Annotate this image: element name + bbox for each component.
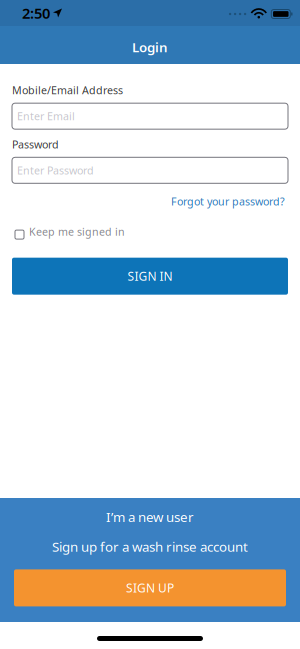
button[interactable]: SIGN UP xyxy=(14,569,286,606)
staticText: Enter Password xyxy=(17,163,94,177)
staticText: SIGN UP xyxy=(126,580,174,596)
button[interactable]: SIGN IN xyxy=(12,258,288,295)
staticText: Keep me signed in xyxy=(29,224,125,239)
staticText: Login xyxy=(132,38,168,56)
staticText: 2:50 xyxy=(22,3,50,23)
staticText: Enter Email xyxy=(17,109,75,123)
staticText: Password xyxy=(12,137,59,151)
button[interactable]: Enter Email xyxy=(12,103,288,129)
staticText: Forgot your password? xyxy=(171,194,285,208)
button[interactable]: Keep me signed in xyxy=(12,227,125,242)
button[interactable]: Forgot your password? xyxy=(171,194,285,208)
button[interactable]: Enter Password xyxy=(12,157,288,183)
staticText: Sign up for a wash rinse account xyxy=(52,538,248,555)
staticText: I’m a new user xyxy=(106,508,194,526)
staticText: SIGN IN xyxy=(127,268,172,284)
staticText: Mobile/Email Address xyxy=(12,83,123,97)
